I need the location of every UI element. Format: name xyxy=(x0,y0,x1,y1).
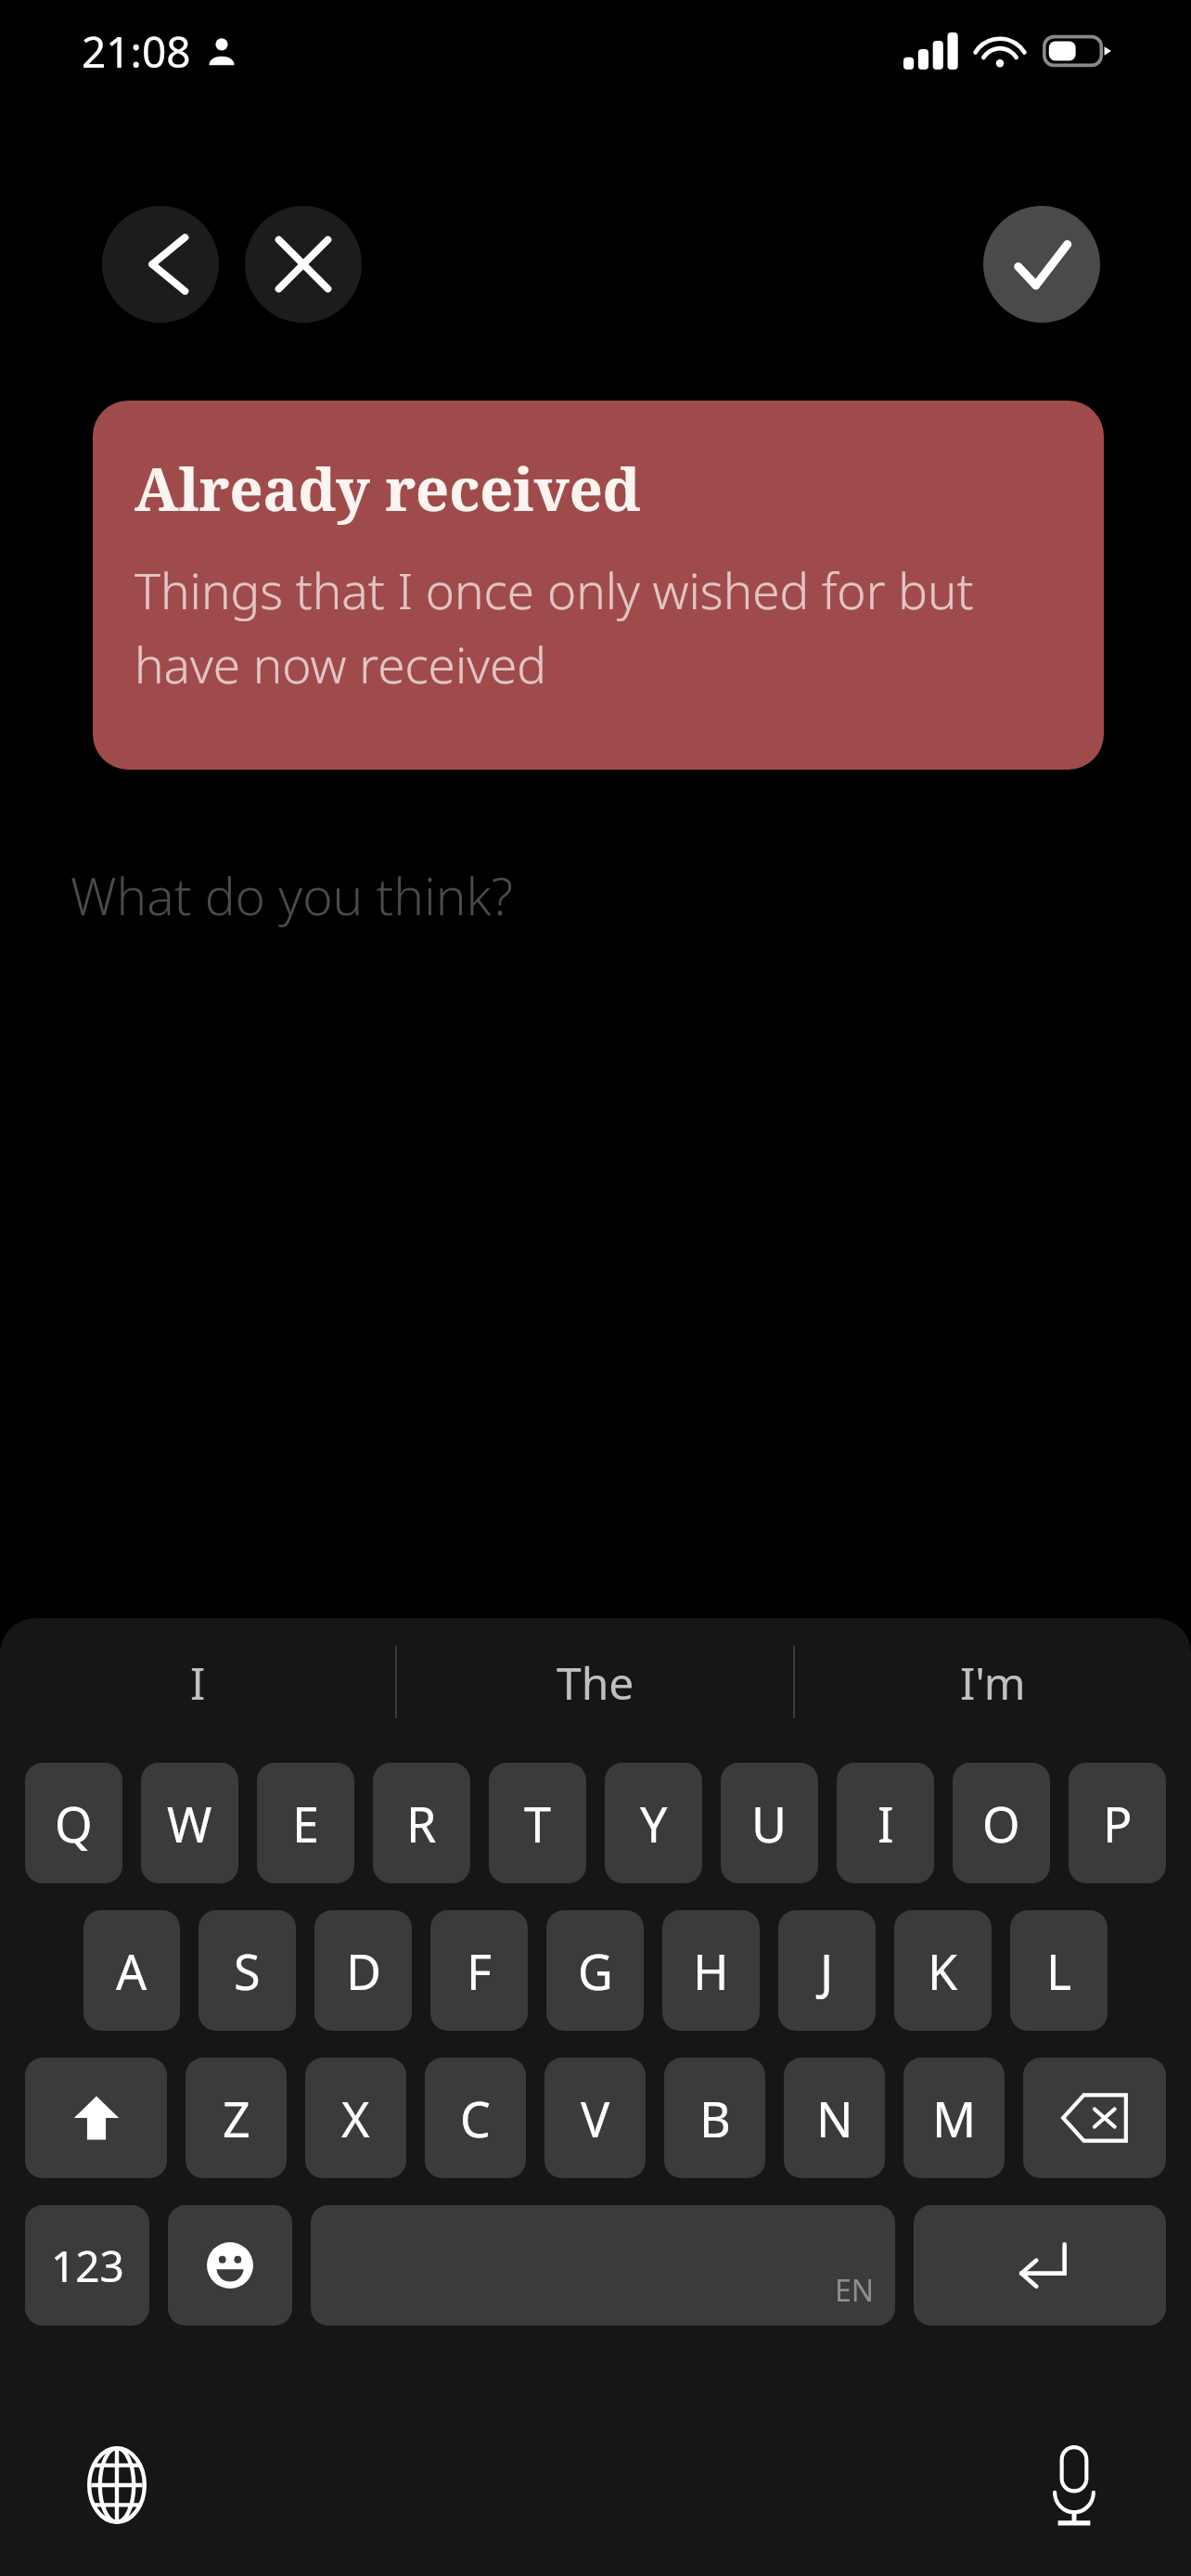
button[interactable]: I xyxy=(837,1763,934,1883)
staticText: Already received xyxy=(134,449,641,529)
staticText: B xyxy=(699,2085,731,2151)
staticText: O xyxy=(982,1791,1020,1856)
button[interactable]: Y xyxy=(605,1763,702,1883)
button[interactable]: Already received xyxy=(93,401,1104,770)
staticText: R xyxy=(406,1791,437,1856)
staticText: Z xyxy=(223,2085,250,2151)
staticText: D xyxy=(346,1938,381,2004)
staticText: Y xyxy=(640,1791,668,1856)
button[interactable]: Close xyxy=(245,206,362,323)
button[interactable]: Backspace xyxy=(1023,2058,1166,2178)
button[interactable]: S xyxy=(198,1910,296,2031)
button[interactable]: O xyxy=(953,1763,1050,1883)
button[interactable]: A xyxy=(83,1910,180,2031)
button[interactable]: B xyxy=(664,2058,765,2178)
button[interactable]: R xyxy=(373,1763,470,1883)
button[interactable]: Emoji xyxy=(168,2205,292,2326)
button[interactable]: G xyxy=(546,1910,644,2031)
staticText: P xyxy=(1103,1791,1133,1856)
staticText: H xyxy=(693,1938,729,2004)
button[interactable]: Space xyxy=(311,2205,895,2326)
staticText: What do you think? xyxy=(70,861,513,930)
button[interactable]: Enter xyxy=(914,2205,1166,2326)
button[interactable]: Z xyxy=(186,2058,287,2178)
button[interactable]: V xyxy=(544,2058,646,2178)
staticText: X xyxy=(341,2085,370,2151)
button[interactable]: 123 xyxy=(25,2205,149,2326)
staticText: 123 xyxy=(51,2237,124,2295)
button[interactable]: Save xyxy=(983,206,1100,323)
staticText: K xyxy=(928,1938,958,2004)
staticText: N xyxy=(816,2085,853,2151)
staticText: U xyxy=(751,1791,788,1856)
staticText: Things that I once only wished for but h… xyxy=(134,556,1070,697)
staticText: M xyxy=(932,2085,977,2151)
staticText: V xyxy=(581,2085,610,2151)
button[interactable]: M xyxy=(903,2058,1005,2178)
button[interactable]: The xyxy=(397,1618,793,1746)
button[interactable]: I xyxy=(0,1618,395,1746)
button[interactable]: N xyxy=(784,2058,885,2178)
staticText: I'm xyxy=(960,1652,1026,1713)
staticText: W xyxy=(167,1791,212,1856)
button[interactable]: H xyxy=(662,1910,760,2031)
staticText: Q xyxy=(55,1791,93,1856)
staticText: S xyxy=(234,1938,261,2004)
button[interactable]: P xyxy=(1069,1763,1166,1883)
button[interactable]: U xyxy=(721,1763,818,1883)
staticText: T xyxy=(524,1791,551,1856)
staticText: G xyxy=(578,1938,613,2004)
button[interactable]: K xyxy=(894,1910,992,2031)
button[interactable]: T xyxy=(489,1763,586,1883)
button[interactable]: Voice input xyxy=(1017,2428,1132,2543)
staticText: E xyxy=(292,1791,319,1856)
staticText: 21:08 xyxy=(82,22,191,81)
button[interactable]: C xyxy=(425,2058,526,2178)
button[interactable]: Shift xyxy=(25,2058,167,2178)
button[interactable]: E xyxy=(257,1763,354,1883)
button[interactable]: X xyxy=(305,2058,406,2178)
button[interactable]: Change language xyxy=(59,2428,174,2543)
staticText: J xyxy=(820,1938,834,2004)
button[interactable]: L xyxy=(1010,1910,1108,2031)
staticText: F xyxy=(467,1938,492,2004)
staticText: A xyxy=(116,1938,147,2004)
staticText: L xyxy=(1046,1938,1072,2004)
staticText: I xyxy=(190,1652,206,1713)
staticText: The xyxy=(557,1652,634,1713)
button[interactable]: F xyxy=(430,1910,528,2031)
button[interactable]: Q xyxy=(25,1763,122,1883)
staticText: I xyxy=(877,1791,894,1856)
button[interactable]: D xyxy=(314,1910,412,2031)
button[interactable]: Back xyxy=(102,206,219,323)
staticText: EN xyxy=(835,2270,875,2311)
button[interactable]: I'm xyxy=(795,1618,1191,1746)
button[interactable]: W xyxy=(141,1763,238,1883)
staticText: C xyxy=(460,2085,491,2151)
button[interactable]: J xyxy=(778,1910,876,2031)
